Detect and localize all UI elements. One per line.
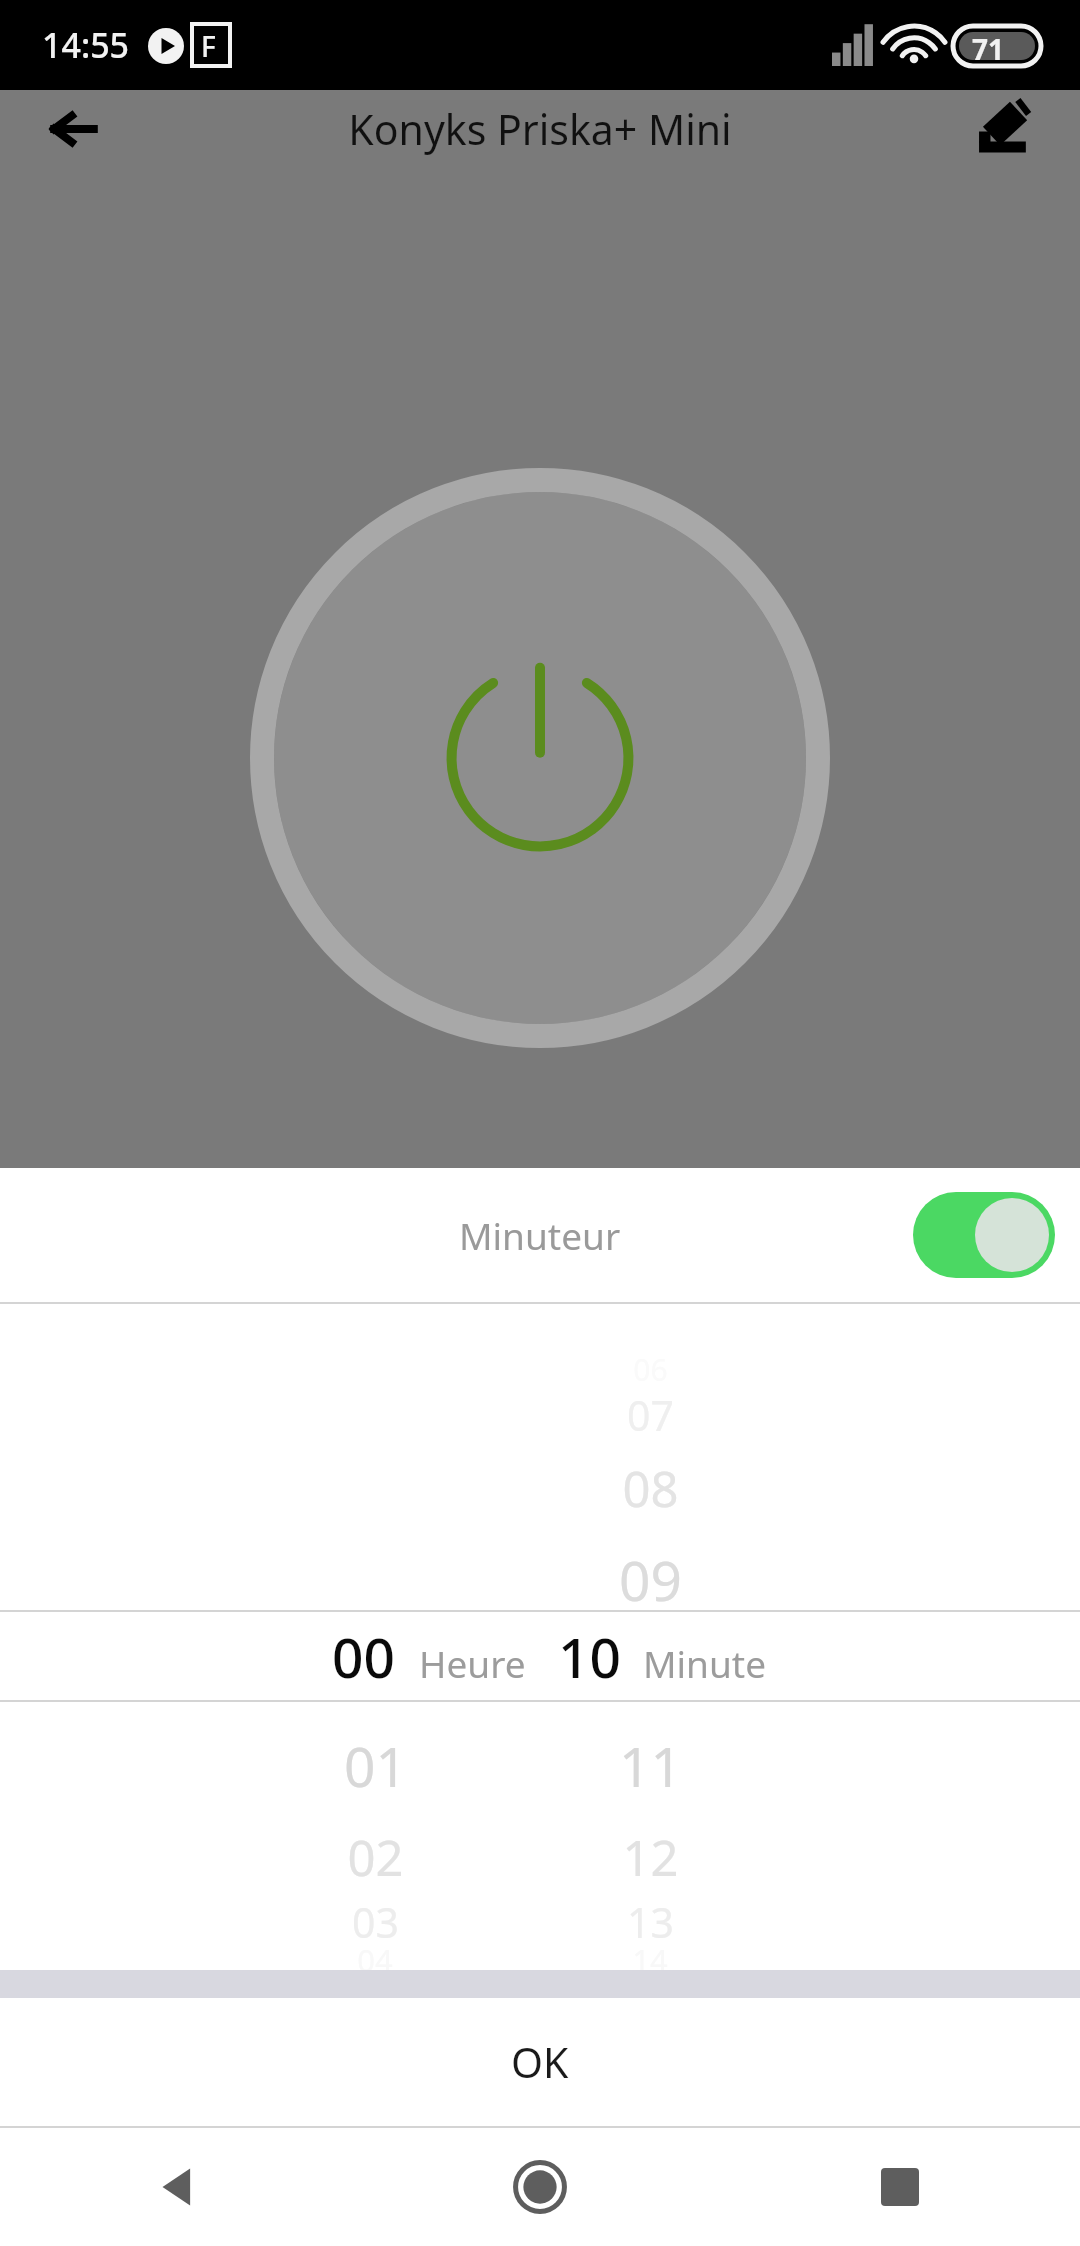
staticText: Heure bbox=[419, 1638, 526, 1688]
staticText: 01 bbox=[344, 1728, 407, 1803]
button[interactable]: Minuteur bbox=[0, 1168, 1080, 1302]
button[interactable]: Edit bbox=[964, 90, 1044, 168]
staticText: 07 bbox=[627, 1387, 674, 1443]
staticText: 00 bbox=[332, 1619, 395, 1694]
button[interactable]: Power toggle bbox=[250, 468, 830, 1048]
staticText: 11 bbox=[619, 1728, 682, 1803]
button[interactable]: Back bbox=[36, 91, 112, 167]
staticText: 09 bbox=[619, 1542, 682, 1617]
staticText: 10 bbox=[558, 1619, 621, 1694]
staticText: 12 bbox=[622, 1824, 679, 1891]
button[interactable]: Home bbox=[492, 2139, 588, 2235]
staticText: 08 bbox=[622, 1455, 679, 1522]
staticText: 14 bbox=[632, 1939, 668, 1981]
staticText: 03 bbox=[352, 1894, 399, 1950]
staticText: F bbox=[201, 27, 216, 65]
staticText: 14:55 bbox=[42, 22, 130, 68]
staticText: 71 bbox=[972, 30, 1005, 68]
staticText: Minute bbox=[643, 1638, 767, 1688]
button[interactable]: OK bbox=[0, 1998, 1080, 2126]
button[interactable]: Recents bbox=[852, 2139, 948, 2235]
staticText: 02 bbox=[347, 1824, 404, 1891]
staticText: Konyks Priska+ Mini bbox=[348, 101, 732, 157]
staticText: Minuteur bbox=[459, 1210, 621, 1260]
staticText: 13 bbox=[627, 1894, 674, 1950]
staticText: OK bbox=[511, 2034, 569, 2090]
button[interactable]: Back bbox=[132, 2139, 228, 2235]
button[interactable]: Minuteur on bbox=[913, 1192, 1055, 1278]
staticText: 04 bbox=[357, 1939, 393, 1981]
